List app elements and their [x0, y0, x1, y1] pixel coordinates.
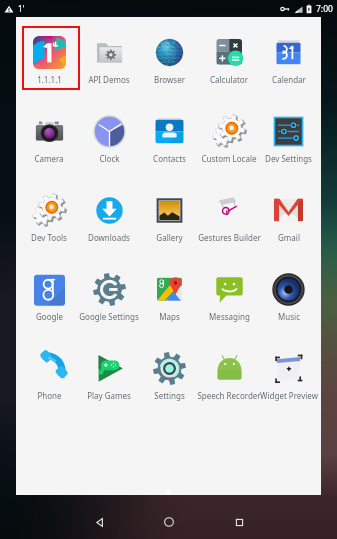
button[interactable]: Gallery: [139, 175, 199, 254]
staticText: Google: [36, 311, 63, 322]
button[interactable]: Clock: [79, 96, 139, 175]
staticText: Settings: [154, 390, 185, 401]
staticText: 1': [18, 3, 25, 14]
staticText: Calendar: [272, 74, 306, 85]
staticText: API Demos: [88, 74, 130, 85]
staticText: Contacts: [153, 153, 186, 164]
button[interactable]: Dev Settings: [259, 96, 318, 175]
button[interactable]: API Demos: [79, 17, 139, 96]
staticText: Messaging: [209, 311, 250, 322]
staticText: Phone: [37, 390, 62, 401]
staticText: Gmail: [278, 232, 300, 243]
button[interactable]: Settings: [139, 333, 199, 412]
staticText: Camera: [34, 153, 64, 164]
staticText: 7:00: [316, 3, 333, 15]
staticText: Maps: [159, 311, 180, 322]
button[interactable]: Widget Preview: [259, 333, 318, 412]
button[interactable]: Messaging: [199, 254, 259, 333]
staticText: 1.1.1.1: [37, 74, 62, 85]
button[interactable]: Maps: [139, 254, 199, 333]
button[interactable]: Gestures Builder: [199, 175, 259, 254]
staticText: Music: [278, 311, 300, 322]
staticText: Widget Preview: [260, 390, 318, 401]
button[interactable]: Gmail: [259, 175, 318, 254]
staticText: Custom Locale: [201, 153, 257, 164]
staticText: Gallery: [156, 232, 183, 243]
button[interactable]: 1.1.1.1: [19, 17, 79, 96]
button[interactable]: Browser: [139, 17, 199, 96]
button[interactable]: Camera: [19, 96, 79, 175]
button[interactable]: Dev Tools: [19, 175, 79, 254]
button[interactable]: Google: [19, 254, 79, 333]
button[interactable]: Recents: [204, 505, 274, 539]
button[interactable]: Phone: [19, 333, 79, 412]
staticText: Speech Recorder: [197, 390, 261, 401]
staticText: Browser: [154, 74, 185, 85]
button[interactable]: Contacts: [139, 96, 199, 175]
staticText: Dev Tools: [31, 232, 67, 243]
button[interactable]: Calendar: [259, 17, 318, 96]
button[interactable]: Google Settings: [79, 254, 139, 333]
button[interactable]: Downloads: [79, 175, 139, 254]
staticText: Downloads: [88, 232, 130, 243]
button[interactable]: Home: [134, 505, 204, 539]
staticText: Dev Settings: [265, 153, 312, 164]
staticText: Play Games: [87, 390, 131, 401]
button[interactable]: Calculator: [199, 17, 259, 96]
button[interactable]: Back: [64, 505, 134, 539]
button[interactable]: Custom Locale: [199, 96, 259, 175]
staticText: Clock: [99, 153, 120, 164]
staticText: Google Settings: [79, 311, 139, 322]
button[interactable]: Play Games: [79, 333, 139, 412]
staticText: Gestures Builder: [198, 232, 261, 243]
button[interactable]: Speech Recorder: [199, 333, 259, 412]
button[interactable]: Music: [259, 254, 318, 333]
staticText: Calculator: [210, 74, 248, 85]
